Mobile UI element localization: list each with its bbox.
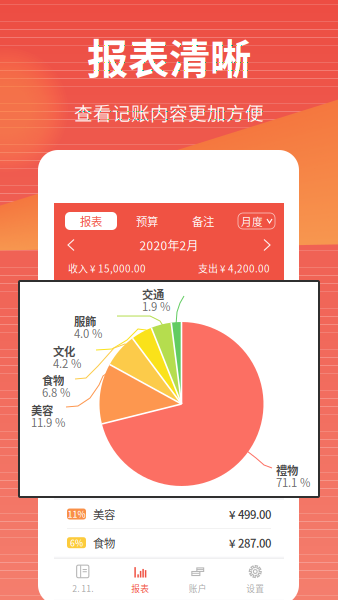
- staticText: ¥ 287.00: [229, 534, 271, 551]
- button[interactable]: 报表: [65, 212, 117, 230]
- button[interactable]: Next month: [256, 236, 278, 254]
- button[interactable]: 月度: [238, 213, 275, 229]
- staticText: 报表: [80, 213, 102, 229]
- staticText: 2020年2月: [139, 236, 198, 254]
- button[interactable]: Previous month: [60, 236, 82, 254]
- staticText: 4.2 %: [53, 355, 81, 371]
- staticText: 报表清晰: [87, 26, 251, 86]
- staticText: 11%: [67, 508, 85, 520]
- button[interactable]: 11%: [54, 500, 284, 528]
- staticText: 月度: [241, 213, 263, 229]
- staticText: 交通: [142, 286, 164, 302]
- staticText: 1.9 %: [142, 298, 170, 314]
- staticText: 4.0 %: [74, 325, 102, 341]
- staticText: 支出 ¥ 4,200.00: [198, 261, 270, 275]
- staticText: 6%: [70, 536, 83, 549]
- staticText: 食物: [42, 372, 64, 388]
- staticText: 6.8 %: [42, 384, 70, 400]
- staticText: 文化: [53, 343, 75, 359]
- staticText: 71.1 %: [276, 474, 310, 490]
- staticText: 美容: [31, 402, 53, 418]
- staticText: 11.9 %: [31, 414, 65, 430]
- staticText: 账户: [189, 582, 207, 594]
- staticText: 备注: [192, 213, 214, 229]
- staticText: 设置: [246, 582, 264, 594]
- button[interactable]: 设置: [226, 559, 284, 600]
- staticText: ¥ 499.00: [229, 506, 271, 522]
- staticText: 美容: [93, 506, 115, 522]
- button[interactable]: 备注: [177, 212, 229, 230]
- staticText: 禮物: [276, 462, 298, 478]
- button[interactable]: 账户: [169, 559, 226, 600]
- staticText: 服飾: [74, 313, 96, 329]
- staticText: 查看记账内容更加方便: [74, 99, 264, 126]
- button[interactable]: 报表: [111, 559, 169, 600]
- staticText: 报表: [131, 582, 149, 594]
- staticText: 2. 11.: [72, 582, 93, 594]
- button[interactable]: 预算: [121, 212, 173, 230]
- staticText: 收入 ¥ 15,000.00: [68, 261, 146, 275]
- button[interactable]: 6%: [54, 529, 284, 557]
- staticText: 预算: [136, 213, 158, 229]
- staticText: 食物: [93, 534, 115, 551]
- button[interactable]: 2. 11.: [54, 559, 111, 600]
